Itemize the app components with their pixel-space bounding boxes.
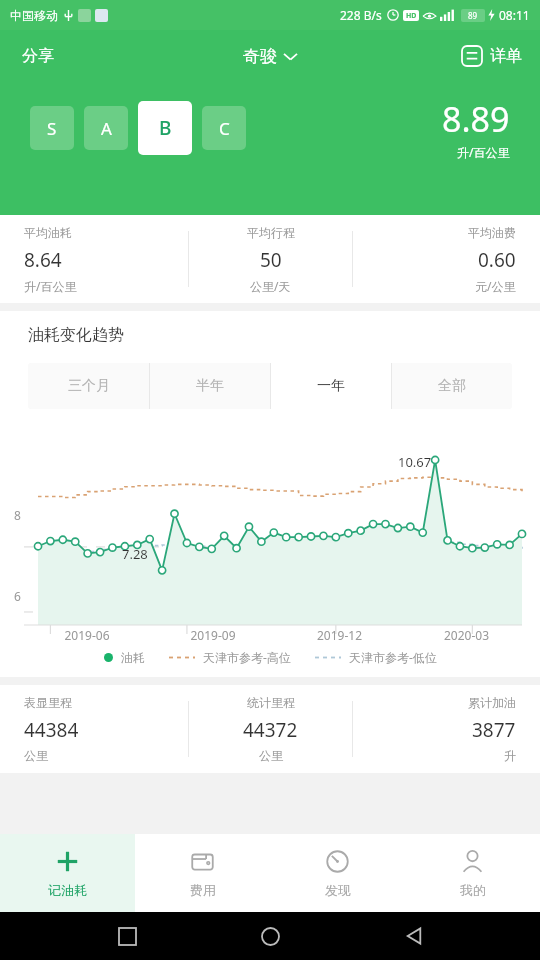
staticText: 费用 [190, 882, 216, 898]
staticText: 公里 [24, 748, 48, 763]
staticText: C [219, 117, 230, 140]
staticText: 奇骏 [243, 46, 277, 67]
staticText: 统计里程 [247, 695, 295, 710]
button[interactable]: 分享 [12, 40, 64, 72]
staticText: 我的 [460, 882, 486, 898]
staticText: 50 [260, 247, 282, 273]
staticText: 89 [468, 10, 478, 21]
staticText: 平均行程 [247, 225, 295, 240]
button[interactable]: 发现 [270, 834, 405, 912]
staticText: 8.64 [24, 247, 62, 273]
staticText: 天津市参考-高位 [203, 649, 291, 665]
staticText: 发现 [325, 882, 351, 898]
button[interactable]: 奇骏 [235, 40, 305, 73]
staticText: 累计加油 [468, 695, 516, 710]
staticText: 一年 [317, 377, 345, 395]
button[interactable]: C [202, 106, 246, 150]
button[interactable]: 全部 [392, 363, 512, 409]
staticText: 油耗 [121, 650, 145, 665]
staticText: 2019-09 [150, 627, 276, 643]
staticText: HD [406, 11, 417, 21]
staticText: 详单 [490, 46, 522, 66]
staticText: 44384 [24, 717, 79, 743]
staticText: S [47, 117, 57, 140]
button[interactable]: 详单 [455, 40, 528, 72]
staticText: 10.67 [398, 453, 432, 471]
other: 详单 [461, 45, 483, 67]
staticText: 公里 [259, 748, 283, 763]
staticText: 44372 [243, 717, 298, 743]
button[interactable]: 平均行程 [189, 225, 352, 294]
button[interactable]: Back [397, 919, 431, 953]
button[interactable]: 记油耗 [0, 834, 135, 912]
staticText: 2020-03 [403, 627, 530, 643]
staticText: B [159, 115, 172, 141]
button[interactable]: A [84, 106, 128, 150]
staticText: 公里/天 [250, 278, 291, 294]
staticText: A [101, 117, 112, 140]
staticText: 2019-06 [24, 627, 150, 643]
button[interactable]: B [138, 101, 192, 155]
staticText: 半年 [196, 377, 224, 395]
staticText: 8 [14, 507, 21, 523]
button[interactable]: 三个月 [28, 363, 149, 409]
staticText: 中国移动 [10, 8, 58, 23]
staticText: 记油耗 [48, 882, 87, 898]
button[interactable]: 一年 [271, 363, 391, 409]
staticText: 228 B/s [340, 7, 382, 23]
button[interactable]: 费用 [135, 834, 270, 912]
staticText: 升/百公里 [24, 278, 77, 294]
staticText: 元/公里 [475, 278, 516, 294]
staticText: 平均油耗 [24, 225, 72, 240]
button[interactable]: S [30, 106, 74, 150]
button[interactable]: 累计加油 [353, 695, 516, 763]
staticText: 油耗变化趋势 [28, 325, 124, 345]
staticText: 三个月 [68, 377, 110, 395]
button[interactable]: Recents [110, 919, 144, 953]
staticText: 0.60 [478, 247, 516, 273]
staticText: 7.28 [122, 545, 148, 563]
staticText: 全部 [438, 377, 466, 395]
staticText: 表显里程 [24, 695, 72, 710]
button[interactable]: 平均油费 [353, 225, 516, 294]
staticText: 08:11 [499, 7, 530, 23]
button[interactable]: 半年 [150, 363, 270, 409]
button[interactable]: 我的 [405, 834, 540, 912]
staticText: 平均油费 [468, 225, 516, 240]
staticText: 2019-12 [276, 627, 403, 643]
button[interactable]: 统计里程 [189, 695, 352, 763]
staticText: 3877 [472, 717, 516, 743]
staticText: 8.89 [442, 96, 510, 142]
staticText: 天津市参考-低位 [349, 649, 437, 665]
staticText: 6 [14, 588, 21, 604]
staticText: 分享 [22, 46, 54, 66]
button[interactable]: 平均油耗 [24, 225, 188, 294]
button[interactable]: Home [253, 919, 287, 953]
staticText: 升/百公里 [457, 144, 510, 160]
staticText: 升 [504, 748, 516, 763]
button[interactable]: 表显里程 [24, 695, 188, 763]
